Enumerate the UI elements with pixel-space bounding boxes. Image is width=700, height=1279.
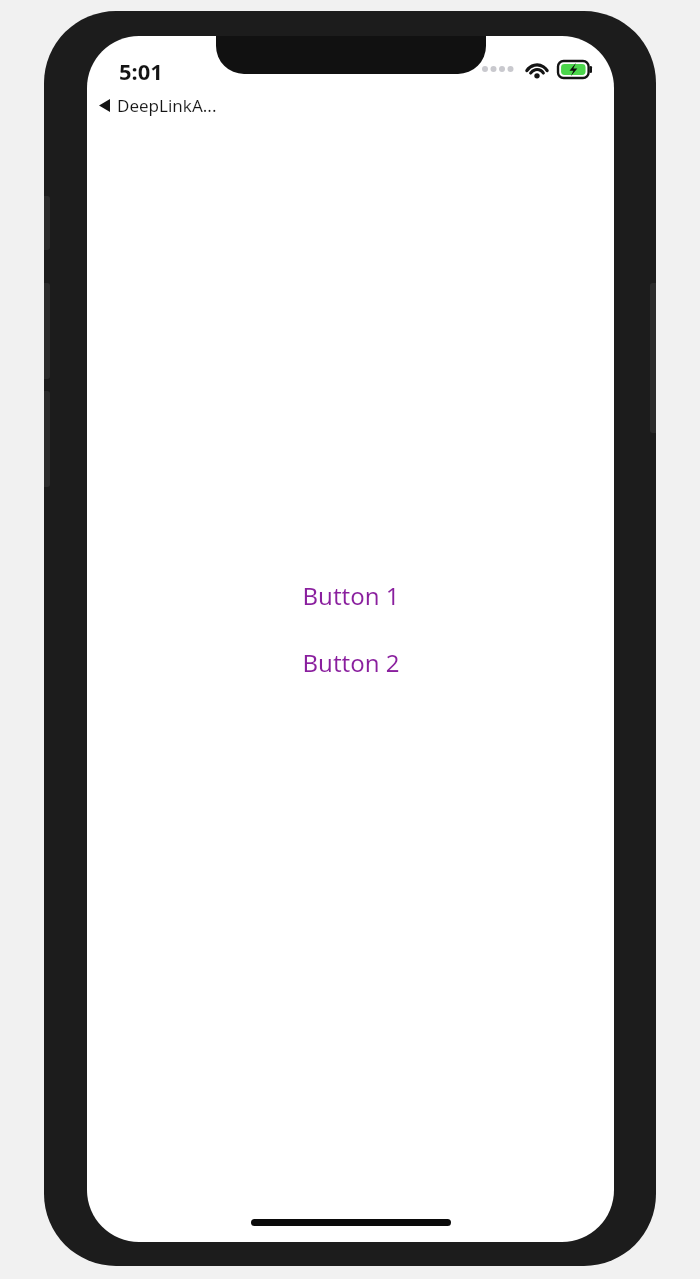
button[interactable]: Back [87, 92, 229, 123]
staticText: 5:01 [119, 56, 163, 86]
button[interactable]: Button 2 [286, 640, 416, 685]
staticText: Button 1 [302, 579, 400, 612]
other: Back [99, 99, 110, 112]
button[interactable]: Button 1 [286, 573, 416, 618]
staticText: Button 2 [302, 646, 400, 679]
staticText: DeepLinkA... [117, 94, 217, 117]
